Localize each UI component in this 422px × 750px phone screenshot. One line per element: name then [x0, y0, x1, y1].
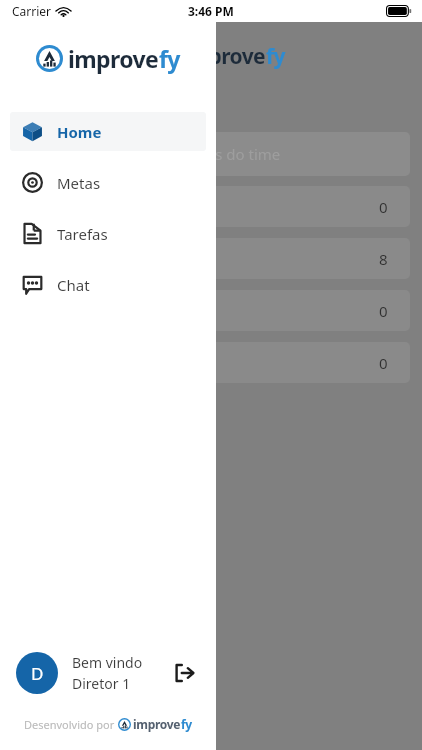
button[interactable]: Pendências do time	[12, 132, 410, 176]
button[interactable]: Metas	[10, 163, 206, 202]
staticText: Desenvolvido por	[24, 717, 118, 732]
staticText: Chat	[57, 275, 90, 295]
button[interactable]: 0	[12, 290, 410, 331]
staticText: fy	[266, 42, 285, 71]
staticText: 3:46 PM	[188, 3, 234, 19]
staticText: fy	[181, 716, 192, 732]
button[interactable]: Home	[10, 112, 206, 151]
button[interactable]: D	[16, 652, 200, 694]
button[interactable]: Sair	[170, 658, 200, 688]
staticText: Bem vindo	[72, 653, 143, 672]
button[interactable]: 0	[12, 186, 410, 227]
staticText: Carrier	[12, 3, 52, 19]
staticText: 0	[379, 301, 388, 321]
staticText: 0	[379, 353, 388, 373]
staticText: improve	[183, 42, 266, 71]
button[interactable]: 8	[12, 238, 410, 279]
staticText: Pendências do time	[142, 144, 281, 164]
staticText: improve	[68, 43, 159, 74]
button[interactable]: Tarefas	[4, 694, 110, 750]
button[interactable]: 0	[12, 342, 410, 383]
staticText: Diretor 1	[72, 674, 131, 693]
staticText: 0	[379, 197, 388, 217]
staticText: D	[31, 662, 44, 685]
staticText: Home	[57, 122, 102, 142]
staticText: improve	[133, 716, 181, 732]
button[interactable]: Tarefas	[10, 214, 206, 253]
staticText: Metas	[57, 173, 101, 193]
staticText: fy	[159, 43, 180, 74]
staticText: 8	[379, 249, 388, 269]
button[interactable]: Chat	[10, 265, 206, 304]
staticText: Tarefas	[57, 224, 108, 244]
button[interactable]: Chat	[110, 694, 216, 750]
